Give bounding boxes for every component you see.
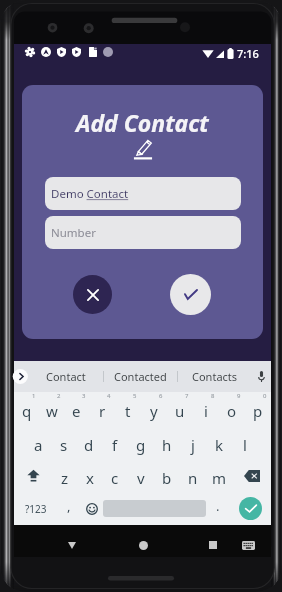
button[interactable]: Save: [170, 274, 211, 315]
button[interactable]: ?123: [14, 492, 57, 525]
staticText: 7: [185, 392, 189, 400]
button[interactable]: Voice input: [251, 361, 271, 392]
staticText: w: [46, 401, 58, 421]
staticText: 2: [57, 392, 61, 400]
staticText: p: [253, 401, 263, 421]
staticText: v: [137, 468, 145, 488]
button[interactable]: Back: [58, 531, 86, 559]
staticText: o: [227, 401, 237, 421]
staticText: m: [212, 468, 227, 488]
staticText: c: [111, 468, 119, 488]
staticText: 9: [237, 392, 241, 400]
staticText: g: [136, 435, 146, 455]
button[interactable]: p: [245, 392, 271, 426]
staticText: l: [243, 435, 247, 455]
staticText: q: [22, 401, 32, 421]
staticText: t: [125, 401, 131, 421]
button[interactable]: n: [180, 459, 206, 492]
button[interactable]: ,: [57, 492, 80, 525]
button[interactable]: c: [102, 459, 128, 492]
staticText: Add Contact: [76, 107, 209, 138]
staticText: 1: [32, 392, 36, 400]
button[interactable]: Contacted: [104, 361, 177, 392]
staticText: 6: [159, 392, 163, 400]
button[interactable]: Demo Contact: [45, 177, 241, 210]
staticText: Demo Contact: [51, 186, 129, 202]
staticText: Contact: [46, 369, 86, 384]
button[interactable]: g: [128, 426, 154, 459]
button[interactable]: Enter: [239, 497, 262, 520]
button[interactable]: b: [154, 459, 180, 492]
button[interactable]: t: [115, 392, 141, 426]
button[interactable]: f: [102, 426, 128, 459]
button[interactable]: Number: [45, 216, 241, 249]
staticText: r: [99, 401, 106, 421]
staticText: i: [204, 401, 208, 421]
button[interactable]: Contacts: [178, 361, 251, 392]
button[interactable]: q: [14, 392, 39, 426]
staticText: Number: [51, 225, 96, 241]
staticText: 4: [107, 392, 111, 400]
staticText: k: [215, 435, 224, 455]
button[interactable]: Contact: [29, 361, 103, 392]
button[interactable]: d: [76, 426, 102, 459]
button[interactable]: m: [206, 459, 232, 492]
button[interactable]: Expand suggestions: [14, 361, 29, 392]
button[interactable]: h: [154, 426, 180, 459]
staticText: f: [112, 435, 118, 455]
button[interactable]: v: [128, 459, 154, 492]
staticText: d: [84, 435, 94, 455]
button[interactable]: y: [141, 392, 167, 426]
button[interactable]: k: [206, 426, 232, 459]
staticText: 7:16: [237, 46, 259, 61]
button[interactable]: w: [39, 392, 64, 426]
button[interactable]: r: [89, 392, 115, 426]
button[interactable]: x: [77, 459, 102, 492]
staticText: .: [216, 497, 220, 515]
staticText: Contacts: [192, 369, 238, 384]
button[interactable]: Home: [129, 531, 157, 559]
staticText: ?123: [25, 502, 47, 516]
staticText: 5: [133, 392, 137, 400]
button[interactable]: .: [206, 492, 229, 525]
staticText: y: [150, 401, 158, 421]
button[interactable]: e: [64, 392, 89, 426]
button[interactable]: Cancel: [73, 275, 112, 314]
button[interactable]: Shift: [14, 459, 52, 492]
staticText: x: [86, 468, 94, 488]
staticText: ,: [67, 497, 71, 515]
staticText: h: [162, 435, 172, 455]
staticText: n: [188, 468, 198, 488]
button[interactable]: Backspace: [232, 459, 271, 492]
button[interactable]: Emoji: [80, 492, 103, 525]
button[interactable]: j: [180, 426, 206, 459]
button[interactable]: s: [51, 426, 76, 459]
button[interactable]: l: [232, 426, 258, 459]
button[interactable]: u: [167, 392, 193, 426]
button[interactable]: a: [26, 426, 51, 459]
button[interactable]: i: [193, 392, 219, 426]
staticText: e: [72, 401, 81, 421]
button[interactable]: Switch keyboard: [234, 531, 262, 559]
staticText: u: [175, 401, 185, 421]
button[interactable]: Recent apps: [199, 531, 227, 559]
button[interactable]: z: [52, 459, 77, 492]
staticText: b: [162, 468, 172, 488]
staticText: z: [61, 468, 69, 488]
staticText: s: [60, 435, 68, 455]
staticText: 0: [263, 392, 267, 400]
button[interactable]: o: [219, 392, 245, 426]
staticText: a: [34, 435, 43, 455]
staticText: 3: [82, 392, 86, 400]
staticText: Contacted: [114, 369, 167, 384]
staticText: j: [191, 435, 195, 455]
staticText: 8: [211, 392, 215, 400]
